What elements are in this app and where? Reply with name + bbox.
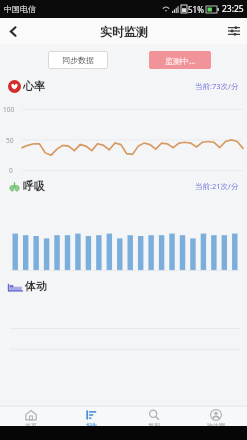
staticText: 监测中... (165, 55, 196, 66)
staticText: 同步数据 (62, 55, 94, 65)
button[interactable]: Back (0, 18, 26, 44)
staticText: 51% (188, 4, 204, 15)
button[interactable]: 发现 (123, 406, 185, 440)
button[interactable]: 跨牛网 (185, 406, 247, 440)
staticText: 报告 (86, 422, 98, 430)
button[interactable]: 报告 (61, 406, 123, 440)
staticText: 50 (6, 136, 14, 145)
staticText: 呼吸 (23, 179, 45, 193)
staticText: 0 (9, 166, 13, 175)
staticText: 23:25 (222, 3, 244, 15)
staticText: 当前:21次/分 (195, 181, 239, 191)
button[interactable]: Settings (221, 18, 247, 44)
staticText: 体动 (25, 279, 47, 293)
button[interactable]: 同步数据 (48, 51, 108, 69)
staticText: 实时监测 (100, 24, 148, 39)
staticText: 当前:73次/分 (195, 81, 239, 91)
staticText: 100 (3, 105, 15, 114)
staticText: 跨牛网 (207, 422, 225, 430)
staticText: 心率 (23, 79, 45, 93)
button[interactable]: 首页 (0, 406, 61, 440)
staticText: 中国电信 (4, 4, 36, 14)
staticText: 发现 (148, 422, 160, 430)
button[interactable]: 监测中... (149, 51, 211, 69)
staticText: 首页 (25, 422, 37, 430)
